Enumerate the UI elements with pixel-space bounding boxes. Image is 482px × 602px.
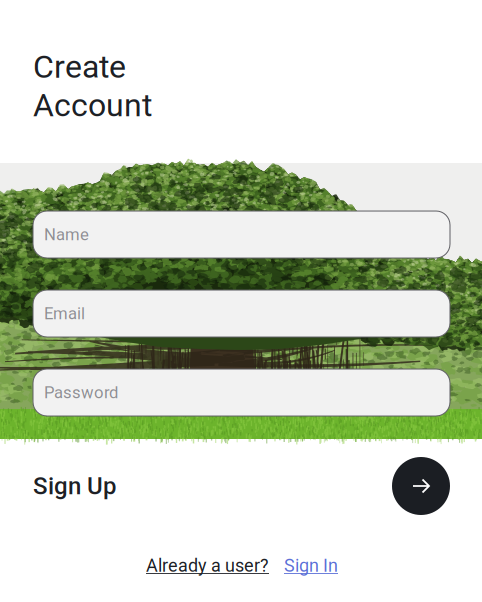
staticText: Name <box>44 225 89 244</box>
staticText: Email <box>44 304 85 323</box>
staticText: Sign Up <box>33 472 116 500</box>
staticText: Already a user? <box>146 555 269 576</box>
button[interactable]: Sign In <box>284 555 338 576</box>
staticText: Create <box>33 48 126 85</box>
staticText: Account <box>33 86 152 124</box>
staticText: Sign In <box>284 555 338 576</box>
button[interactable]: Already a user? <box>146 555 269 576</box>
staticText: Password <box>44 383 118 402</box>
button[interactable]: Continue <box>392 457 450 515</box>
